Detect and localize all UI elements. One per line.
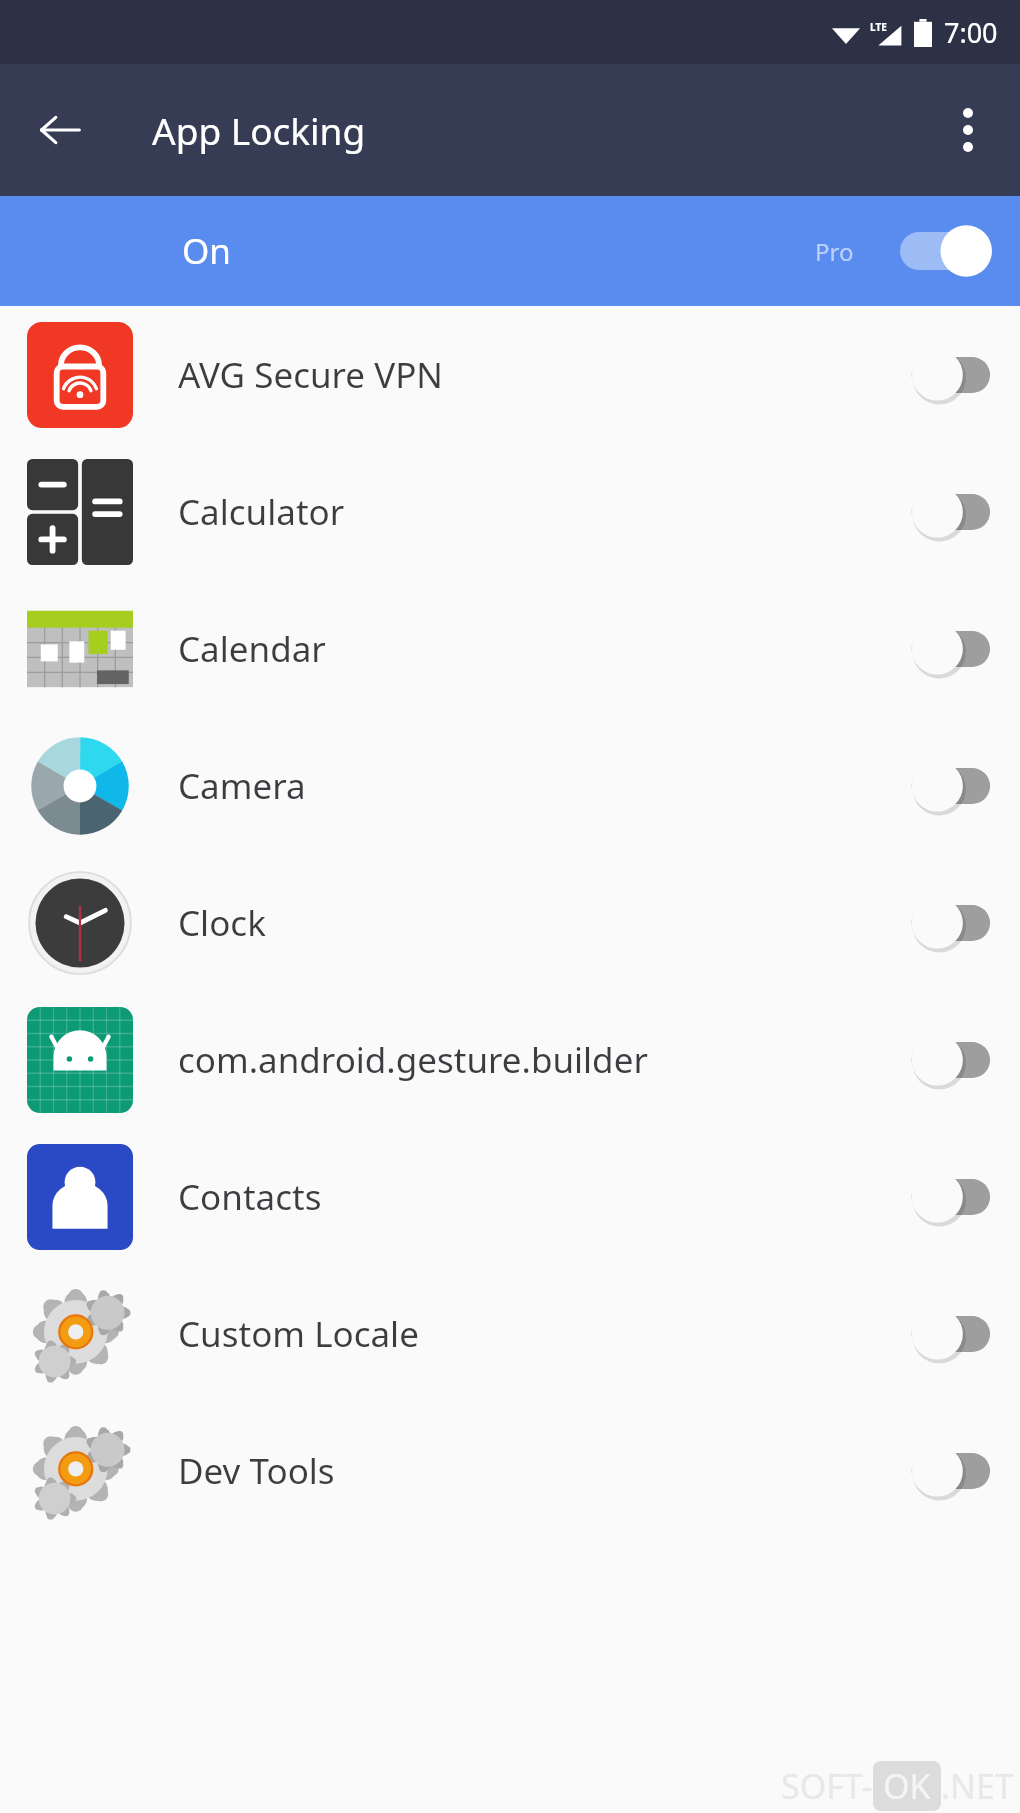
staticText: App Locking — [152, 105, 366, 155]
staticText: Contacts — [178, 1173, 884, 1221]
staticText: com.android.gesture.builder — [178, 1036, 884, 1084]
button[interactable]: Lock Dev Tools — [896, 1439, 994, 1503]
staticText: 7:00 — [944, 14, 998, 51]
staticText: LTE — [870, 20, 887, 34]
button[interactable]: Lock Calculator — [896, 480, 994, 544]
button[interactable]: More options — [934, 96, 1002, 164]
button[interactable]: Lock com.android.gesture.builder — [896, 1028, 994, 1092]
button[interactable]: Dev Tools — [0, 1402, 1020, 1539]
button[interactable]: Clock — [0, 854, 1020, 991]
button[interactable]: Contacts — [0, 1128, 1020, 1265]
staticText: OK — [883, 1763, 931, 1809]
staticText: Clock — [178, 899, 884, 947]
button[interactable]: Back — [24, 94, 96, 166]
button[interactable]: Lock Contacts — [896, 1165, 994, 1229]
staticText: SOFT- — [781, 1763, 873, 1809]
staticText: .NET — [941, 1763, 1014, 1809]
button[interactable]: Lock Camera — [896, 754, 994, 818]
button[interactable]: Lock Custom Locale — [896, 1302, 994, 1366]
staticText: AVG Secure VPN — [178, 351, 884, 399]
staticText: Dev Tools — [178, 1447, 884, 1495]
button[interactable]: Custom Locale — [0, 1265, 1020, 1402]
button[interactable]: Lock AVG Secure VPN — [896, 343, 994, 407]
button[interactable]: Lock Clock — [896, 891, 994, 955]
button[interactable]: Calendar — [0, 580, 1020, 717]
staticText: Calculator — [178, 488, 884, 536]
staticText: On — [182, 227, 231, 275]
button[interactable]: Lock Calendar — [896, 617, 994, 681]
button[interactable]: Calculator — [0, 443, 1020, 580]
button[interactable]: Camera — [0, 717, 1020, 854]
button[interactable]: com.android.gesture.builder — [0, 991, 1020, 1128]
staticText: Camera — [178, 762, 884, 810]
button[interactable]: On — [0, 196, 1020, 306]
button[interactable]: AVG Secure VPN — [0, 306, 1020, 443]
staticText: Pro — [815, 235, 854, 268]
staticText: Calendar — [178, 625, 884, 673]
staticText: Custom Locale — [178, 1310, 884, 1358]
